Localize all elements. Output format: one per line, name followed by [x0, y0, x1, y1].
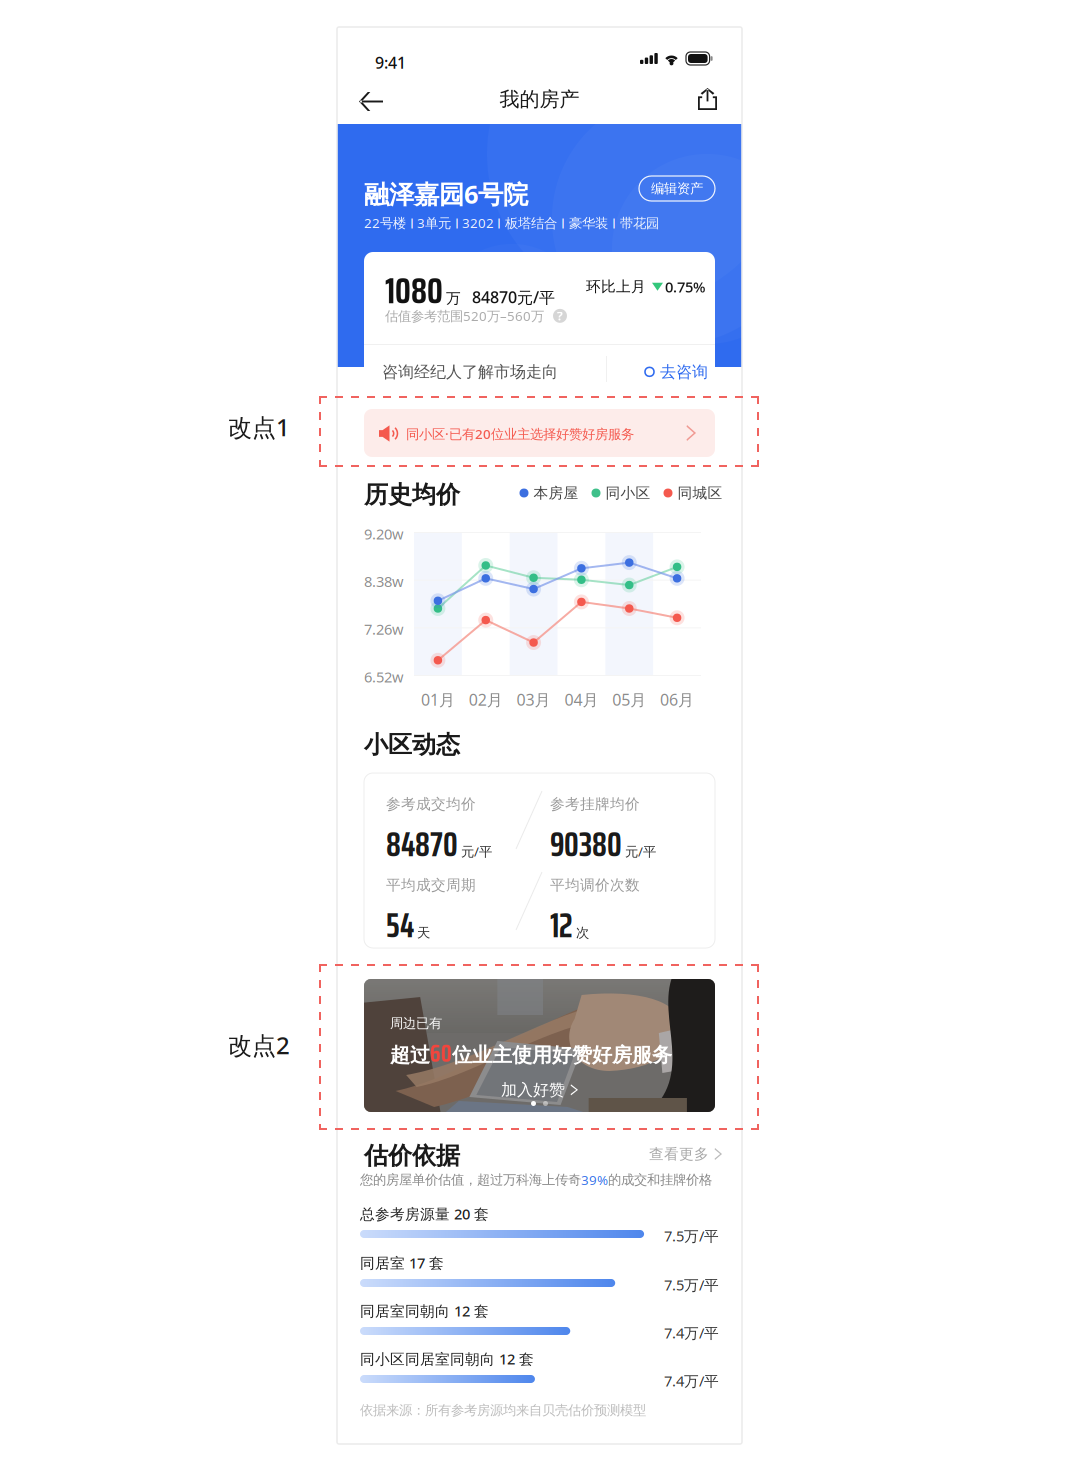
staticText: 同居室 17 套	[360, 1253, 444, 1272]
button[interactable]: 同小区·已有20位业主选择好赞好房服务	[364, 409, 715, 457]
staticText: 编辑资产	[651, 180, 703, 197]
button[interactable]: 返回	[349, 80, 393, 123]
staticText: 天	[417, 925, 430, 941]
staticText: 06月	[660, 689, 694, 710]
button[interactable]: 周边已有	[364, 979, 715, 1112]
staticText: 同小区	[605, 484, 650, 502]
staticText: 9.20w	[364, 524, 404, 543]
staticText: ?	[557, 308, 563, 324]
staticText: 环比上月	[586, 278, 646, 296]
staticText: 7.4万/平	[664, 1323, 719, 1342]
staticText: 元/平	[625, 842, 656, 860]
staticText: 咨询经纪人了解市场走向	[382, 362, 558, 382]
staticText: 6.52w	[364, 667, 404, 686]
staticText: 同城区	[677, 484, 722, 502]
staticText: 小区动态	[364, 730, 460, 759]
staticText: 查看更多	[649, 1145, 709, 1163]
staticText: 54	[386, 898, 414, 953]
staticText: 同居室同朝向 12 套	[360, 1301, 489, 1320]
staticText: 本房屋	[533, 484, 578, 502]
staticText: 02月	[469, 689, 503, 710]
staticText: 90380	[550, 817, 622, 872]
button[interactable]: 咨询经纪人了解市场走向	[364, 345, 715, 392]
staticText: 01月	[421, 689, 455, 710]
staticText: 05月	[612, 689, 646, 710]
staticText: 84870元/平	[472, 286, 555, 308]
staticText: 22号楼 Ⅰ 3单元 Ⅰ 3202 Ⅰ 板塔结合 Ⅰ 豪华装 Ⅰ 带花园	[364, 214, 659, 232]
staticText: 改点1	[228, 411, 290, 443]
staticText: 改点2	[228, 1029, 290, 1061]
staticText: 融泽嘉园6号院	[364, 177, 528, 211]
staticText: 的成交和挂牌价格	[608, 1172, 712, 1188]
staticText: 周边已有	[390, 1015, 442, 1031]
staticText: 次	[576, 925, 589, 941]
staticText: 03月	[517, 689, 551, 710]
staticText: 9:41	[375, 52, 406, 73]
staticText: 60	[430, 1033, 452, 1073]
staticText: 好赞好房	[552, 1043, 632, 1067]
staticText: 万	[446, 289, 461, 307]
staticText: 0.75%	[665, 277, 705, 296]
staticText: 依据来源：所有参考房源均来自贝壳估价预测模型	[360, 1402, 646, 1418]
staticText: 7.5万/平	[664, 1226, 719, 1245]
staticText: 参考成交均价	[386, 795, 476, 813]
staticText: 7.5万/平	[664, 1275, 719, 1294]
staticText: 1080	[385, 261, 443, 320]
staticText: 7.4万/平	[664, 1371, 719, 1390]
button[interactable]: 编辑资产	[639, 176, 715, 201]
staticText: 估值参考范围520万–560万	[385, 307, 544, 325]
staticText: 84870	[386, 817, 458, 872]
staticText: 8.38w	[364, 572, 404, 591]
staticText: 12	[550, 898, 573, 953]
staticText: 超过	[390, 1043, 430, 1067]
staticText: 04月	[564, 689, 598, 710]
staticText: 我的房产	[499, 87, 579, 112]
staticText: 39%	[581, 1171, 608, 1189]
button[interactable]: 查看更多	[649, 1145, 722, 1163]
staticText: 7.26w	[364, 619, 404, 639]
staticText: 平均成交周期	[386, 876, 476, 894]
staticText: 同小区·已有20位业主选择好赞好房服务	[406, 425, 634, 443]
staticText: 加入好赞	[501, 1080, 565, 1100]
staticText: 历史均价	[364, 480, 460, 509]
button[interactable]: 估值说明	[544, 308, 567, 324]
staticText: 元/平	[461, 842, 492, 860]
staticText: 去咨询	[660, 362, 708, 382]
staticText: 您的房屋单价估值，超过万科海上传奇	[360, 1172, 581, 1188]
staticText: 估价依据	[364, 1141, 460, 1170]
button[interactable]: 分享	[688, 78, 727, 120]
staticText: 位业主使用	[452, 1043, 552, 1067]
staticText: 同小区同居室同朝向 12 套	[360, 1349, 534, 1368]
staticText: 参考挂牌均价	[550, 795, 640, 813]
staticText: 服务	[632, 1043, 672, 1067]
staticText: 总参考房源量 20 套	[360, 1204, 489, 1223]
staticText: 平均调价次数	[550, 876, 640, 894]
